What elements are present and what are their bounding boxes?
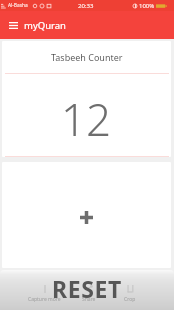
- staticText: 100%: [139, 2, 155, 10]
- staticText: Crop: [124, 296, 136, 303]
- staticText: RESET: [52, 273, 122, 304]
- staticText: Tasbeeh Counter: [51, 51, 123, 63]
- staticText: Al-Basha: [8, 2, 28, 9]
- staticText: 12: [61, 89, 112, 149]
- staticText: 20:33: [78, 2, 94, 10]
- button[interactable]: Crop screenshot: [104, 270, 156, 310]
- button[interactable]: Open navigation drawer: [0, 11, 24, 39]
- staticText: Capture more: [28, 296, 61, 303]
- button[interactable]: Increment tasbeeh counter: [2, 162, 171, 268]
- staticText: myQuran: [24, 19, 66, 32]
- button[interactable]: Share screenshot: [63, 270, 115, 310]
- button[interactable]: Capture more of the screen: [18, 270, 70, 310]
- staticText: Share: [82, 296, 96, 303]
